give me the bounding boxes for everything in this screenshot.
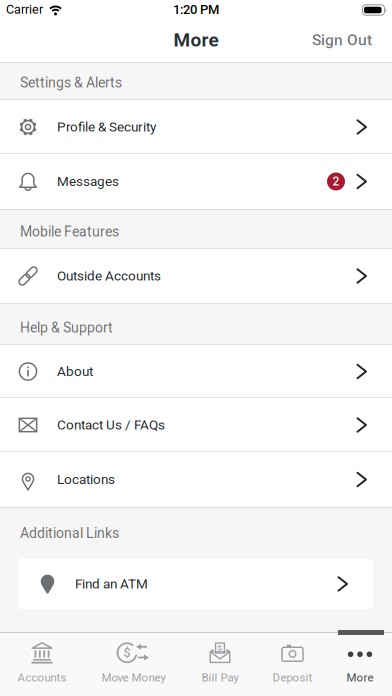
staticText: About [57,364,93,379]
staticText: Additional Links [20,525,119,541]
button[interactable]: Profile & Security [0,100,392,154]
staticText: 1:20 PM [173,2,219,17]
staticText: Sign Out [312,31,372,49]
staticText: Find an ATM [75,576,148,592]
button[interactable]: More [346,642,373,684]
staticText: Bill Pay [201,671,238,684]
staticText: Deposit [272,671,312,684]
button[interactable]: About [0,345,392,398]
staticText: More [173,29,218,51]
button[interactable]: Outside Accounts [0,249,392,303]
button[interactable]: $ [201,642,238,684]
staticText: Messages [57,174,119,189]
button[interactable]: Messages [0,154,392,209]
staticText: Mobile Features [20,224,119,240]
staticText: Carrier [6,2,43,17]
staticText: Move Money [101,671,165,684]
button[interactable]: Locations [0,452,392,507]
staticText: Accounts [17,671,66,684]
button[interactable]: $ [101,642,165,684]
staticText: Help & Support [20,320,113,336]
staticText: 2 [332,174,339,189]
staticText: Settings & Alerts [20,75,122,91]
staticText: Outside Accounts [57,268,161,284]
staticText: Locations [57,472,115,487]
button[interactable]: Deposit [272,642,312,684]
staticText: Contact Us / FAQs [57,417,165,433]
button[interactable]: Accounts [17,642,66,684]
staticText: Profile & Security [57,119,156,135]
button[interactable]: Contact Us / FAQs [0,398,392,452]
staticText: $ [217,643,222,652]
staticText: More [346,671,373,684]
staticText: $ [123,645,130,660]
button[interactable]: Find an ATM [18,558,373,609]
button[interactable]: Sign Out [312,31,392,49]
